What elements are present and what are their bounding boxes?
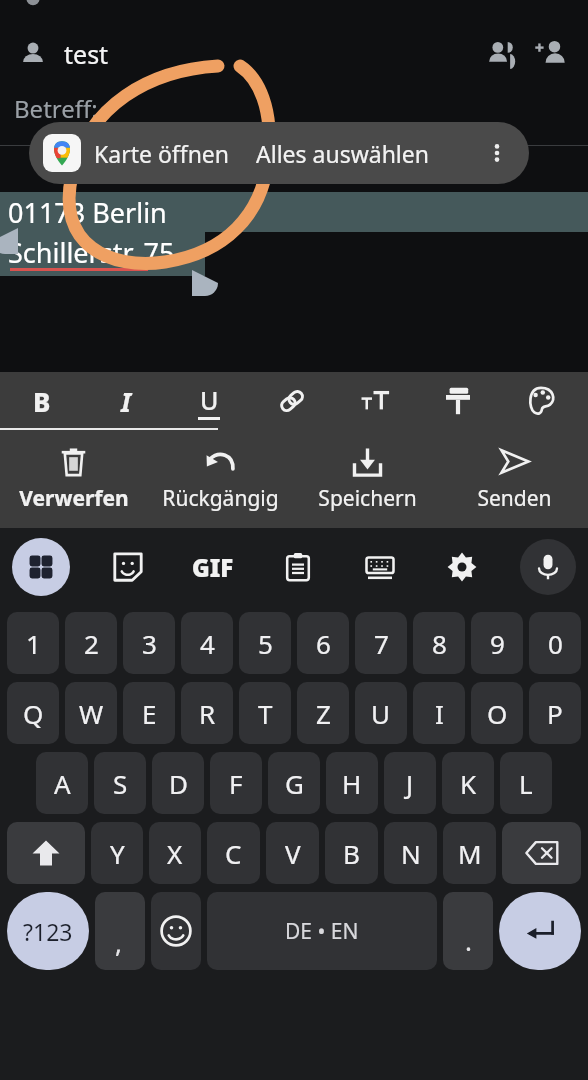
button[interactable]: size (333, 372, 416, 430)
staticText: D (169, 766, 188, 801)
staticText: M (458, 836, 482, 871)
staticText: Rückgängig (162, 484, 279, 513)
staticText: R (199, 696, 216, 731)
button[interactable]: G (268, 752, 320, 814)
button[interactable]: R (181, 682, 233, 744)
staticText: 7 (374, 626, 389, 661)
button[interactable]: Q (7, 682, 59, 744)
button[interactable]: E (123, 682, 175, 744)
button[interactable]: H (326, 752, 378, 814)
button[interactable]: Enter (499, 892, 581, 970)
button[interactable]: M (443, 822, 496, 884)
button[interactable]: N (384, 822, 437, 884)
button[interactable]: 5 (239, 612, 291, 674)
button[interactable]: Rückgängig (147, 430, 294, 528)
button[interactable]: Y (91, 822, 143, 884)
staticText: 2 (84, 626, 99, 661)
button[interactable]: Alles auswählen (256, 138, 429, 169)
button[interactable]: Backspace (502, 822, 581, 884)
button[interactable]: . (443, 892, 493, 970)
button[interactable]: P (529, 682, 581, 744)
button[interactable]: I (413, 682, 465, 744)
staticText: 0 (548, 626, 563, 661)
staticText: 01173 Berlin (8, 194, 167, 231)
button[interactable]: W (65, 682, 117, 744)
staticText: O (487, 696, 508, 731)
staticText: J (406, 766, 414, 801)
staticText: C (225, 836, 242, 871)
staticText: E (142, 696, 157, 731)
button[interactable]: Sticker (104, 543, 152, 591)
button[interactable]: Senden (441, 430, 588, 528)
staticText: 9 (490, 626, 505, 661)
staticText: 8 (432, 626, 447, 661)
button[interactable]: 2 (65, 612, 117, 674)
button[interactable]: C (207, 822, 260, 884)
button[interactable]: Keyboard layout (356, 543, 404, 591)
button[interactable]: T (239, 682, 291, 744)
staticText: B (343, 836, 360, 871)
button[interactable]: Emoji (151, 892, 201, 970)
staticText: Q (23, 696, 44, 731)
button[interactable]: More options (475, 131, 519, 175)
button[interactable]: Voice input (520, 539, 576, 595)
button[interactable]: Karte öffnen (43, 134, 234, 172)
button[interactable]: A (36, 752, 88, 814)
staticText: X (167, 836, 183, 871)
button[interactable]: X (149, 822, 201, 884)
button[interactable]: link (250, 372, 333, 430)
button[interactable]: fill (416, 372, 499, 430)
staticText: Alles auswählen (256, 138, 429, 169)
button[interactable]: Apps (12, 538, 70, 596)
button[interactable]: L (500, 752, 552, 814)
staticText: Betreff: (14, 92, 98, 125)
button[interactable]: Verwerfen (0, 430, 147, 528)
button[interactable]: , (95, 892, 145, 970)
button[interactable]: S (94, 752, 146, 814)
button[interactable]: 1 (7, 612, 59, 674)
button[interactable]: 7 (355, 612, 407, 674)
button[interactable]: Clipboard (274, 543, 322, 591)
staticText: 5 (258, 626, 273, 661)
staticText: N (401, 836, 421, 871)
button[interactable]: palette (499, 372, 582, 430)
staticText: P (547, 696, 563, 731)
button[interactable]: B (325, 822, 378, 884)
staticText: L (519, 766, 533, 801)
button[interactable]: 4 (181, 612, 233, 674)
staticText: G (285, 766, 304, 801)
staticText: Karte öffnen (94, 138, 230, 169)
staticText: Verwerfen (19, 484, 129, 513)
staticText: Y (110, 836, 125, 871)
staticText: 6 (316, 626, 331, 661)
button[interactable]: O (471, 682, 523, 744)
button[interactable]: K (442, 752, 494, 814)
button[interactable]: 8 (413, 612, 465, 674)
button[interactable]: B (0, 372, 84, 430)
button[interactable]: GIF (186, 545, 240, 590)
button[interactable]: Speichern (294, 430, 441, 528)
button[interactable]: 0 (529, 612, 581, 674)
button[interactable]: Settings (438, 543, 486, 591)
button[interactable]: F (210, 752, 262, 814)
button[interactable]: Groups (480, 32, 524, 76)
button[interactable]: Contact (16, 37, 50, 71)
button[interactable]: D (152, 752, 204, 814)
staticText: Z (316, 696, 331, 731)
staticText: I (121, 384, 131, 419)
button[interactable]: V (266, 822, 319, 884)
button[interactable]: 3 (123, 612, 175, 674)
button[interactable]: Shift (7, 822, 85, 884)
button[interactable]: J (384, 752, 436, 814)
button[interactable]: 6 (297, 612, 349, 674)
staticText: Speichern (318, 484, 417, 513)
button[interactable]: ?123 (7, 892, 89, 970)
button[interactable]: DE • EN (207, 892, 437, 970)
button[interactable]: Z (297, 682, 349, 744)
button[interactable]: I (84, 372, 167, 430)
button[interactable]: 9 (471, 612, 523, 674)
button[interactable]: Add contact (528, 32, 572, 76)
staticText: 4 (200, 626, 215, 661)
button[interactable]: U (167, 372, 250, 430)
button[interactable]: U (355, 682, 407, 744)
